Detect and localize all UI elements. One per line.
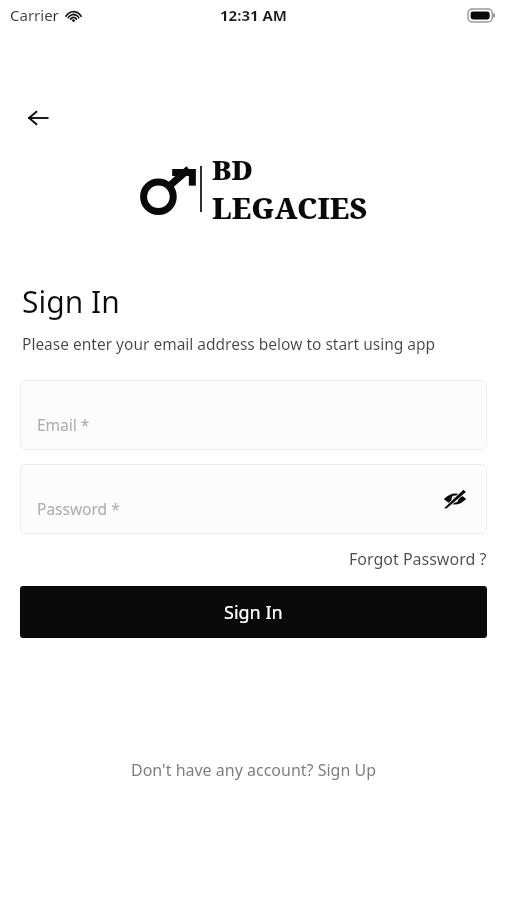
staticText: Email * [37,414,90,435]
staticText: LEGACIES [212,188,367,227]
button[interactable]: Don't have any account? Sign Up [123,755,384,785]
button[interactable]: Show password [435,479,475,519]
button[interactable]: Email * [20,380,487,450]
staticText: Sign In [22,281,120,322]
staticText: Sign In [224,600,283,625]
staticText: Forgot Password ? [349,548,487,570]
button[interactable]: Forgot Password ? [349,546,487,572]
staticText: 12:31 AM [220,5,287,25]
button[interactable]: Sign In [20,586,487,638]
button[interactable]: Password * [20,464,487,534]
button[interactable]: Back [16,96,60,140]
staticText: Please enter your email address below to… [22,333,436,354]
staticText: BD [212,151,253,188]
staticText: Password * [37,498,120,519]
staticText: Carrier [10,5,59,25]
staticText: Don't have any account? Sign Up [131,759,376,781]
